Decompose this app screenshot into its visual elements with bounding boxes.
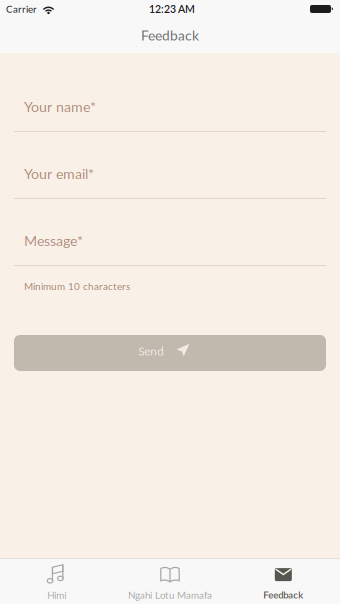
staticText: Feedback <box>263 589 303 601</box>
button[interactable]: Ngahi Lotu Mamafa <box>113 559 227 604</box>
staticText: Minimum 10 characters <box>24 280 130 292</box>
button[interactable]: Send <box>14 335 326 371</box>
staticText: Ngahi Lotu Mamafa <box>128 589 212 601</box>
staticText: Your email* <box>24 165 94 182</box>
staticText: Send <box>138 344 164 358</box>
staticText: Feedback <box>141 27 199 43</box>
staticText: Message* <box>24 232 83 249</box>
staticText: Himi <box>47 589 66 601</box>
staticText: 12:23 AM <box>149 3 195 15</box>
staticText: Your name* <box>24 98 96 115</box>
button[interactable]: Feedback <box>227 559 340 604</box>
button[interactable]: Himi <box>0 559 113 604</box>
staticText: Carrier <box>6 3 37 15</box>
